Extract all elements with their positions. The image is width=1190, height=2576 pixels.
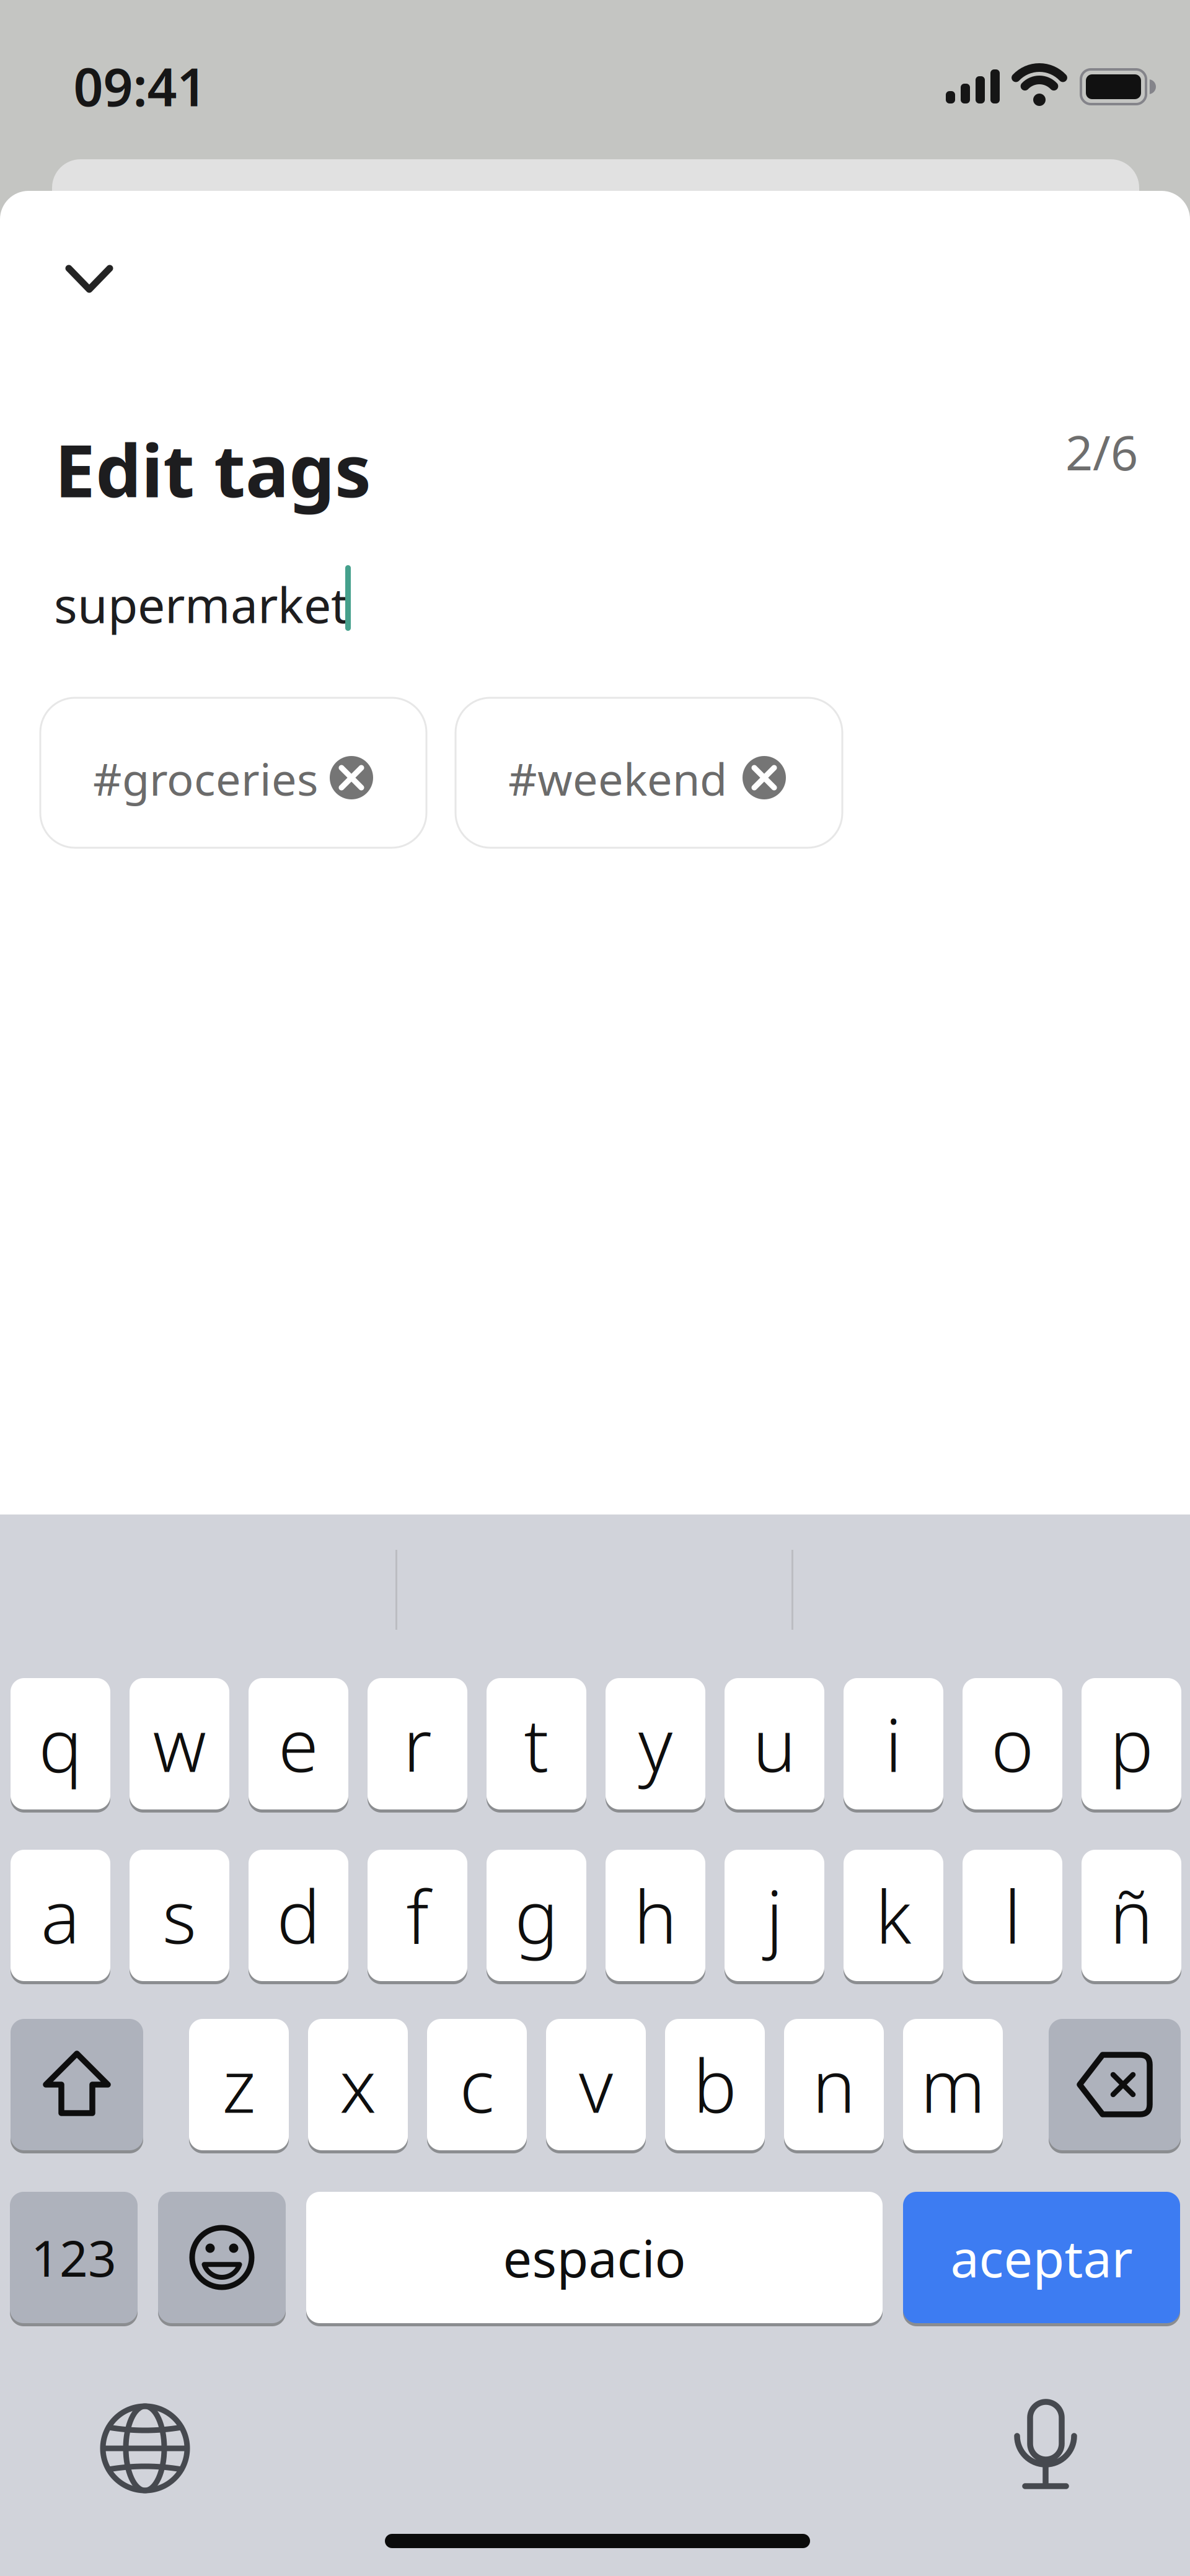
button[interactable]: j — [725, 1850, 824, 1981]
button[interactable]: t — [487, 1678, 586, 1809]
staticText: l — [1004, 1867, 1021, 1964]
button[interactable]: y — [606, 1678, 705, 1809]
button[interactable]: u — [725, 1678, 824, 1809]
button[interactable]: 123 — [10, 2192, 138, 2323]
button[interactable]: Dictation — [996, 2396, 1095, 2495]
button[interactable]: n — [784, 2019, 884, 2150]
staticText: n — [812, 2036, 856, 2133]
staticText: p — [1110, 1696, 1153, 1792]
staticText: x — [340, 2036, 376, 2133]
button[interactable]: r — [368, 1678, 467, 1809]
button[interactable]: Emoji — [158, 2192, 286, 2323]
button[interactable]: k — [844, 1850, 943, 1981]
staticText: b — [693, 2036, 737, 2133]
staticText: s — [162, 1867, 196, 1964]
button[interactable]: Remove tag #weekend — [743, 756, 786, 799]
button[interactable]: o — [963, 1678, 1062, 1809]
button[interactable]: e — [249, 1678, 348, 1809]
button[interactable]: ñ — [1082, 1850, 1181, 1981]
staticText: c — [460, 2036, 494, 2133]
staticText: f — [406, 1867, 429, 1964]
button[interactable]: Shift — [11, 2019, 143, 2150]
button[interactable]: a — [11, 1850, 110, 1981]
staticText: ñ — [1110, 1867, 1153, 1964]
staticText: j — [766, 1867, 783, 1964]
staticText: u — [753, 1696, 796, 1792]
button[interactable]: l — [963, 1850, 1062, 1981]
staticText: v — [579, 2036, 613, 2133]
staticText: a — [41, 1867, 80, 1964]
button[interactable]: w — [130, 1678, 229, 1809]
staticText: #groceries — [93, 749, 318, 808]
button[interactable]: z — [189, 2019, 289, 2150]
button[interactable]: m — [903, 2019, 1003, 2150]
button[interactable]: q — [11, 1678, 110, 1809]
button[interactable]: Dismiss — [64, 265, 115, 296]
staticText: y — [638, 1696, 672, 1792]
staticText: t — [524, 1696, 549, 1792]
button[interactable]: i — [844, 1678, 943, 1809]
staticText: r — [403, 1696, 432, 1792]
button[interactable]: Delete — [1049, 2019, 1181, 2150]
staticText: h — [634, 1867, 677, 1964]
staticText: supermarket — [54, 572, 348, 637]
staticText: m — [920, 2036, 985, 2133]
button[interactable]: x — [308, 2019, 408, 2150]
staticText: k — [875, 1867, 911, 1964]
staticText: #weekend — [508, 749, 727, 808]
staticText: Edit tags — [55, 421, 371, 517]
staticText: aceptar — [950, 2223, 1133, 2292]
staticText: 2/6 — [1065, 420, 1138, 484]
button[interactable]: h — [606, 1850, 705, 1981]
button[interactable]: espacio — [306, 2192, 883, 2323]
button[interactable]: d — [249, 1850, 348, 1981]
button[interactable]: p — [1082, 1678, 1181, 1809]
staticText: e — [278, 1696, 319, 1792]
staticText: 123 — [31, 2225, 117, 2290]
staticText: z — [222, 2036, 256, 2133]
staticText: i — [885, 1696, 902, 1792]
staticText: g — [515, 1867, 558, 1964]
button[interactable]: c — [427, 2019, 527, 2150]
staticText: espacio — [503, 2223, 686, 2292]
staticText: d — [277, 1867, 320, 1964]
button[interactable]: s — [130, 1850, 229, 1981]
button[interactable]: Next keyboard — [95, 2399, 195, 2498]
button[interactable]: f — [368, 1850, 467, 1981]
button[interactable]: g — [487, 1850, 586, 1981]
staticText: o — [991, 1696, 1034, 1792]
staticText: q — [39, 1696, 82, 1792]
button[interactable]: v — [546, 2019, 646, 2150]
button[interactable]: Remove tag #groceries — [330, 756, 373, 799]
staticText: 09:41 — [73, 52, 207, 121]
button[interactable]: aceptar — [903, 2192, 1180, 2323]
button[interactable]: b — [665, 2019, 765, 2150]
staticText: w — [153, 1696, 206, 1792]
